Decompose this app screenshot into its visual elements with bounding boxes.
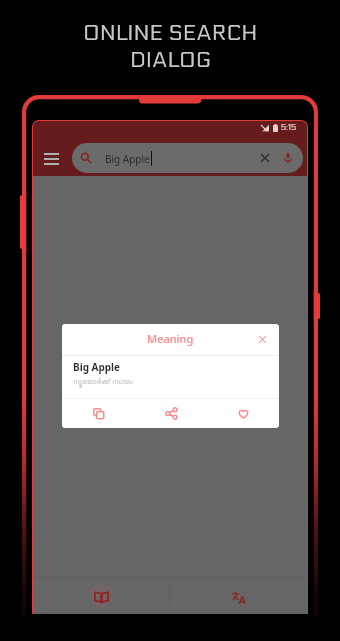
staticText: 5:15 xyxy=(281,123,297,132)
staticText: Big Apple xyxy=(73,360,121,374)
button[interactable]: Open navigation menu xyxy=(40,147,63,170)
button[interactable]: Close xyxy=(255,332,269,346)
button[interactable]: Translate xyxy=(170,577,307,614)
button[interactable]: Dictionary xyxy=(33,577,169,614)
staticText: ന്യൂയോർക്ക് നഗരം xyxy=(73,377,133,387)
button[interactable]: Copy xyxy=(62,399,135,428)
staticText: ONLINE SEARCH xyxy=(83,20,258,46)
button[interactable]: Add to favourites xyxy=(207,399,279,428)
staticText: Big Apple xyxy=(105,152,150,166)
button[interactable]: Clear search text xyxy=(256,149,274,167)
button[interactable]: Voice search xyxy=(279,149,297,167)
button[interactable]: Share xyxy=(135,399,207,428)
button[interactable]: Big Apple xyxy=(72,143,303,173)
staticText: DIALOG xyxy=(130,47,211,73)
staticText: Meaning xyxy=(147,331,194,346)
